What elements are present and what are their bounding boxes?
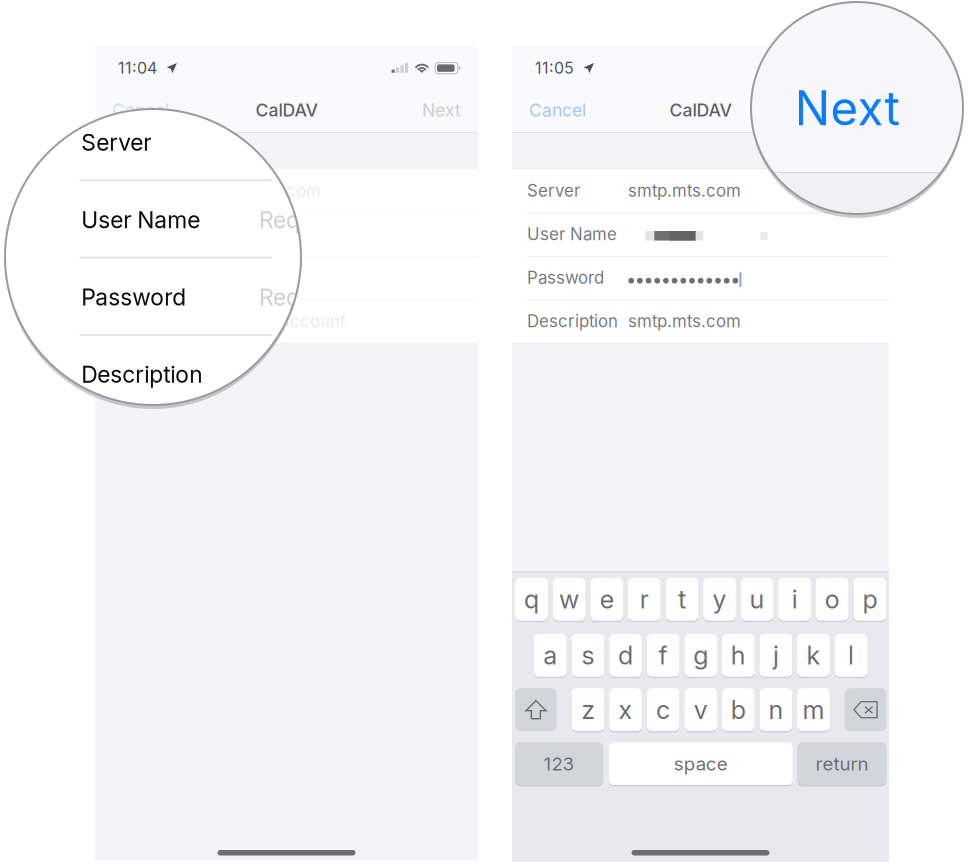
button[interactable]: f bbox=[647, 634, 679, 677]
staticText: CalDAV bbox=[255, 99, 317, 121]
staticText: j bbox=[773, 640, 779, 671]
staticText: 11:04 bbox=[118, 58, 157, 78]
staticText: x bbox=[618, 694, 632, 725]
staticText: p bbox=[862, 584, 877, 615]
staticText: h bbox=[731, 640, 746, 671]
staticText: q bbox=[524, 584, 539, 615]
button[interactable]: n bbox=[759, 688, 792, 731]
button[interactable]: x bbox=[609, 688, 642, 731]
staticText: smtp.mts.com bbox=[208, 181, 321, 201]
button[interactable]: Delete bbox=[845, 688, 886, 731]
staticText: 123 bbox=[544, 752, 575, 775]
staticText: Password bbox=[527, 268, 604, 288]
staticText: o bbox=[825, 584, 840, 615]
staticText: Next bbox=[794, 79, 899, 137]
staticText: Required bbox=[259, 283, 353, 311]
staticText: Password bbox=[81, 283, 186, 311]
button[interactable]: m bbox=[797, 688, 830, 731]
staticText: i bbox=[792, 584, 798, 615]
staticText: Cancel bbox=[529, 99, 586, 121]
staticText: User Name bbox=[110, 224, 200, 244]
button[interactable]: q bbox=[515, 578, 548, 621]
staticText: 11:05 bbox=[535, 58, 574, 78]
button[interactable]: Shift bbox=[515, 688, 557, 731]
staticText: y bbox=[712, 584, 726, 615]
button[interactable]: y bbox=[703, 578, 736, 621]
button[interactable]: l bbox=[835, 634, 867, 677]
staticText: smtp.mts.com bbox=[628, 311, 741, 331]
staticText: Description bbox=[527, 311, 618, 331]
button[interactable]: return bbox=[797, 742, 886, 785]
staticText: a bbox=[543, 640, 557, 671]
staticText: Next bbox=[833, 99, 872, 121]
staticText: f bbox=[659, 640, 668, 671]
staticText: z bbox=[581, 694, 594, 725]
staticText: m bbox=[802, 694, 824, 725]
staticText: Description bbox=[81, 360, 202, 388]
button[interactable]: Cancel bbox=[112, 99, 190, 121]
staticText: Server bbox=[527, 181, 580, 201]
staticText: l bbox=[848, 640, 854, 671]
staticText: Next bbox=[422, 99, 461, 121]
staticText: Optional Account bbox=[208, 311, 345, 331]
staticText: Required bbox=[259, 206, 353, 234]
staticText: c bbox=[656, 694, 670, 725]
button[interactable]: Next bbox=[383, 99, 461, 121]
button[interactable]: d bbox=[609, 634, 642, 677]
button[interactable]: o bbox=[816, 578, 849, 621]
staticText: Cancel bbox=[112, 99, 169, 121]
button[interactable]: c bbox=[647, 688, 679, 731]
staticText: n bbox=[768, 694, 783, 725]
staticText: Required bbox=[208, 224, 279, 244]
button[interactable]: g bbox=[684, 634, 717, 677]
staticText: b bbox=[731, 694, 746, 725]
button[interactable]: Cancel bbox=[529, 99, 607, 121]
button[interactable]: space bbox=[609, 742, 793, 785]
button[interactable]: r bbox=[628, 578, 661, 621]
button[interactable]: 123 bbox=[515, 742, 603, 785]
staticText: User Name bbox=[81, 206, 200, 234]
staticText: Server bbox=[81, 129, 151, 156]
button[interactable]: w bbox=[553, 578, 585, 621]
staticText: User Name bbox=[527, 224, 617, 244]
button[interactable]: a bbox=[534, 634, 567, 677]
button[interactable]: b bbox=[722, 688, 755, 731]
staticText: k bbox=[806, 640, 820, 671]
staticText: t bbox=[678, 584, 686, 615]
button[interactable]: t bbox=[665, 578, 698, 621]
button[interactable]: z bbox=[571, 688, 604, 731]
staticText: smtp.mts.com bbox=[628, 181, 741, 201]
button[interactable]: Next bbox=[741, 79, 953, 137]
button[interactable]: k bbox=[797, 634, 830, 677]
staticText: d bbox=[618, 640, 633, 671]
button[interactable]: u bbox=[741, 578, 773, 621]
button[interactable]: e bbox=[590, 578, 623, 621]
button[interactable]: p bbox=[853, 578, 886, 621]
staticText: g bbox=[693, 640, 708, 671]
button[interactable]: h bbox=[722, 634, 755, 677]
button[interactable]: i bbox=[778, 578, 811, 621]
staticText: w bbox=[559, 584, 579, 615]
staticText: return bbox=[815, 752, 868, 775]
button[interactable]: v bbox=[684, 688, 717, 731]
staticText: e bbox=[600, 584, 614, 615]
staticText: v bbox=[694, 694, 708, 725]
staticText: Optional bbox=[259, 360, 347, 388]
staticText: r bbox=[640, 584, 649, 615]
button[interactable]: j bbox=[759, 634, 792, 677]
button[interactable]: s bbox=[571, 634, 604, 677]
staticText: space bbox=[674, 752, 728, 775]
staticText: u bbox=[750, 584, 765, 615]
staticText: s bbox=[581, 640, 594, 671]
button[interactable]: Next bbox=[794, 99, 872, 121]
staticText: CalDAV bbox=[669, 99, 731, 121]
